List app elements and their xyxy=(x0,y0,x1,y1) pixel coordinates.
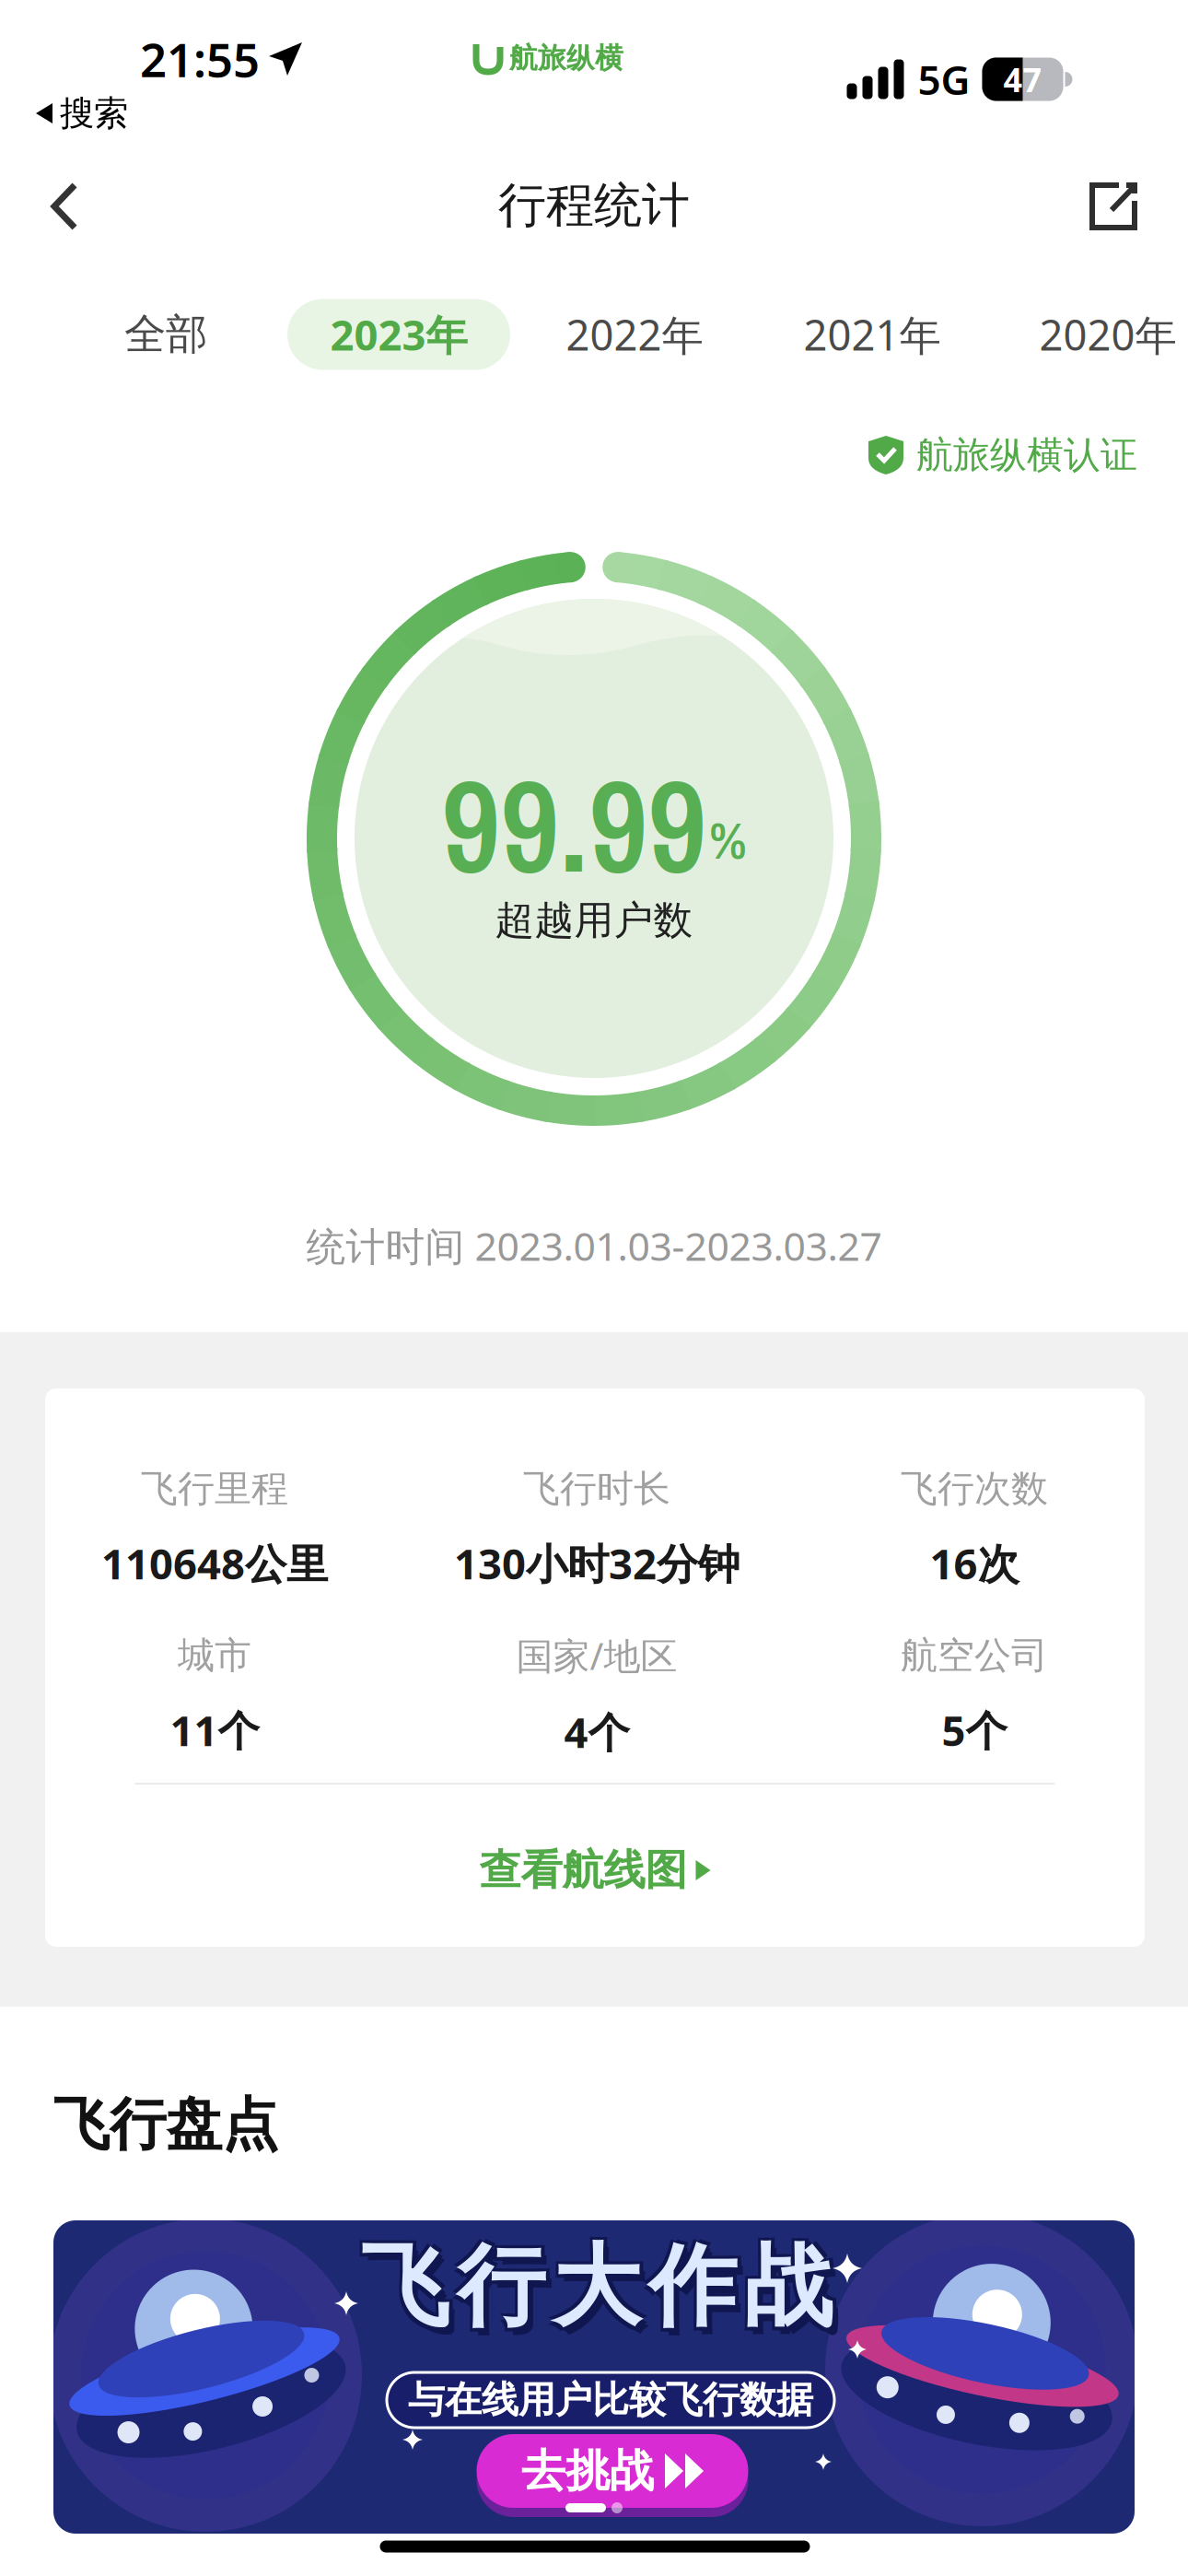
button[interactable]: 分享 xyxy=(1089,181,1138,231)
staticText: 飞行里程 xyxy=(141,1466,288,1511)
staticText: 搜索 xyxy=(60,92,128,135)
staticText: 国家/地区 xyxy=(516,1631,677,1680)
staticText: 110648公里 xyxy=(101,1535,328,1591)
staticText: 飞行大作战 xyxy=(358,2230,830,2338)
staticText: 飞行大作战 xyxy=(367,2240,838,2348)
staticText: 飞行时长 xyxy=(523,1466,670,1511)
staticText: 47 xyxy=(1003,57,1042,101)
staticText: 航旅纵横认证 xyxy=(916,432,1137,478)
staticText: 航空公司 xyxy=(901,1633,1048,1678)
staticText: 超越用户数 xyxy=(495,896,693,945)
staticText: 2020年 xyxy=(1039,307,1176,362)
staticText: 城市 xyxy=(178,1633,251,1678)
staticText: 2023年 xyxy=(330,307,467,362)
staticText: 飞行次数 xyxy=(901,1466,1048,1511)
button[interactable]: 2021年 xyxy=(804,307,941,362)
staticText: 全部 xyxy=(124,309,207,360)
staticText: 去挑战 xyxy=(521,2444,654,2498)
staticText: 航旅纵横 xyxy=(509,41,623,75)
staticText: 4个 xyxy=(564,1704,629,1759)
staticText: 21:55 xyxy=(140,28,260,90)
button[interactable]: 飞行大作战 去挑战 xyxy=(53,2220,1135,2534)
staticText: 5G xyxy=(918,52,970,106)
button[interactable]: 2020年 xyxy=(1039,307,1176,362)
button[interactable]: 2022年 xyxy=(566,307,703,362)
staticText: % xyxy=(709,805,747,875)
staticText: 与在线用户比较飞行数据 xyxy=(408,2377,813,2423)
button[interactable]: 返回搜索 xyxy=(36,92,128,135)
staticText: 飞行大作战 xyxy=(365,2230,836,2338)
staticText: 飞行盘点 xyxy=(53,2090,278,2159)
button[interactable]: 返回 xyxy=(51,181,78,231)
staticText: 行程统计 xyxy=(498,176,690,235)
button[interactable]: 查看航线图 xyxy=(479,1845,710,1896)
staticText: 2022年 xyxy=(566,307,703,362)
button[interactable]: 2023年 xyxy=(287,299,510,370)
staticText: 飞行大作战 xyxy=(365,2236,836,2345)
staticText: 统计时间 2023.01.03-2023.03.27 xyxy=(306,1220,882,1272)
staticText: 5个 xyxy=(942,1702,1007,1758)
staticText: 16次 xyxy=(930,1535,1019,1591)
staticText: 99.99 xyxy=(441,737,706,912)
staticText: 130小时32分钟 xyxy=(454,1535,740,1591)
staticText: 查看航线图 xyxy=(479,1845,687,1896)
staticText: 11个 xyxy=(170,1702,259,1758)
button[interactable]: 全部 xyxy=(124,309,207,360)
staticText: 飞行大作战 xyxy=(361,2232,833,2341)
staticText: 2021年 xyxy=(804,307,941,362)
staticText: 飞行大作战 xyxy=(358,2236,830,2345)
